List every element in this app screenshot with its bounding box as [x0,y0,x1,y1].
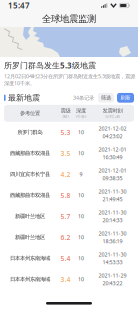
button[interactable]: 西藏那曲市双湖县 [0,143,138,164]
staticText: 09:38:35 [102,174,122,182]
staticText: 2021-12-01 [98,146,126,153]
button[interactable]: 日本本州东南海域 [0,248,138,269]
button[interactable]: 刷新 [117,93,134,103]
staticText: 日本本州东南海域 [10,255,50,262]
staticText: 西藏那曲市双湖县 [10,150,50,157]
staticText: 5.8 [60,191,70,200]
staticText: 20:14:33 [102,216,122,224]
staticText: 10 [78,213,84,220]
staticText: (M) [62,114,68,119]
staticText: 筛选 [101,94,111,101]
staticText: 21:49:45 [102,195,122,203]
staticText: 日本本州东南海域 [10,276,50,283]
staticText: 所罗门群岛 [17,129,42,136]
staticText: 04:23:02 [102,132,122,140]
staticText: 刷新 [120,94,130,101]
staticText: 四川宜宾市长宁县 [10,171,50,178]
staticText: 2021-12-02 [98,125,126,132]
staticText: 5.3 [60,128,70,137]
staticText: 3.4 [60,275,70,284]
staticText: 16:30:49 [102,153,122,161]
button[interactable]: 新疆叶兰地区 [0,206,138,227]
staticText: (千米) [76,114,86,119]
staticText: 12月02日04时23分在所罗门群岛附近发生5.3级地震，震源深度10千米。 [4,73,135,87]
button[interactable]: 筛选 [98,93,114,103]
staticText: 10 [78,255,84,262]
staticText: 10 [78,234,84,241]
staticText: 3.5 [60,149,70,158]
staticText: 15:47 [8,0,30,11]
staticText: 4.2 [60,170,70,179]
staticText: 5.7 [60,212,70,221]
staticText: 18:36:19 [102,237,122,245]
staticText: 所罗门群岛发生5.3级地震 [4,60,96,71]
staticText: 10 [78,129,84,136]
staticText: 新疆叶兰地区 [15,234,45,241]
staticText: 10 [78,276,84,283]
button[interactable]: 日本本州东南海域 [0,269,138,290]
staticText: 34条记录 [73,94,94,101]
staticText: 6.2 [60,233,70,242]
staticText: 2021-11-30 [98,251,126,258]
button[interactable]: 西藏那曲市双湖县 [0,185,138,206]
staticText: 2021-11-29 [98,272,126,279]
staticText: 2021-12-01 [98,167,126,174]
staticText: 20:43:22 [102,279,122,287]
staticText: 2021-11-30 [98,188,126,195]
staticText: 深度 [76,107,86,114]
staticText: 参考位置 [20,110,40,117]
staticText: 5.4 [60,254,70,263]
staticText: 全球地震监测 [42,13,96,25]
staticText: 新疆叶兰地区 [15,213,45,220]
staticText: 西藏那曲市双湖县 [10,192,50,199]
staticText: 2021-11-30 [98,209,126,216]
button[interactable]: 四川宜宾市长宁县 [0,164,138,185]
button[interactable]: 新疆叶兰地区 [0,227,138,248]
staticText: 10 [78,192,84,199]
staticText: 10 [78,150,84,157]
button[interactable]: 所罗门群岛发生5.3级地震 [0,57,138,91]
staticText: 发震时刻 [102,107,122,114]
staticText: 震级 [60,107,70,114]
staticText: 14:53:33 [102,258,122,266]
staticText: (UTC+8) [105,114,119,119]
staticText: 9 [79,171,82,178]
staticText: 2021-11-30 [98,230,126,237]
staticText: 最新地震 [8,93,40,103]
button[interactable]: 所罗门群岛 [0,122,138,143]
